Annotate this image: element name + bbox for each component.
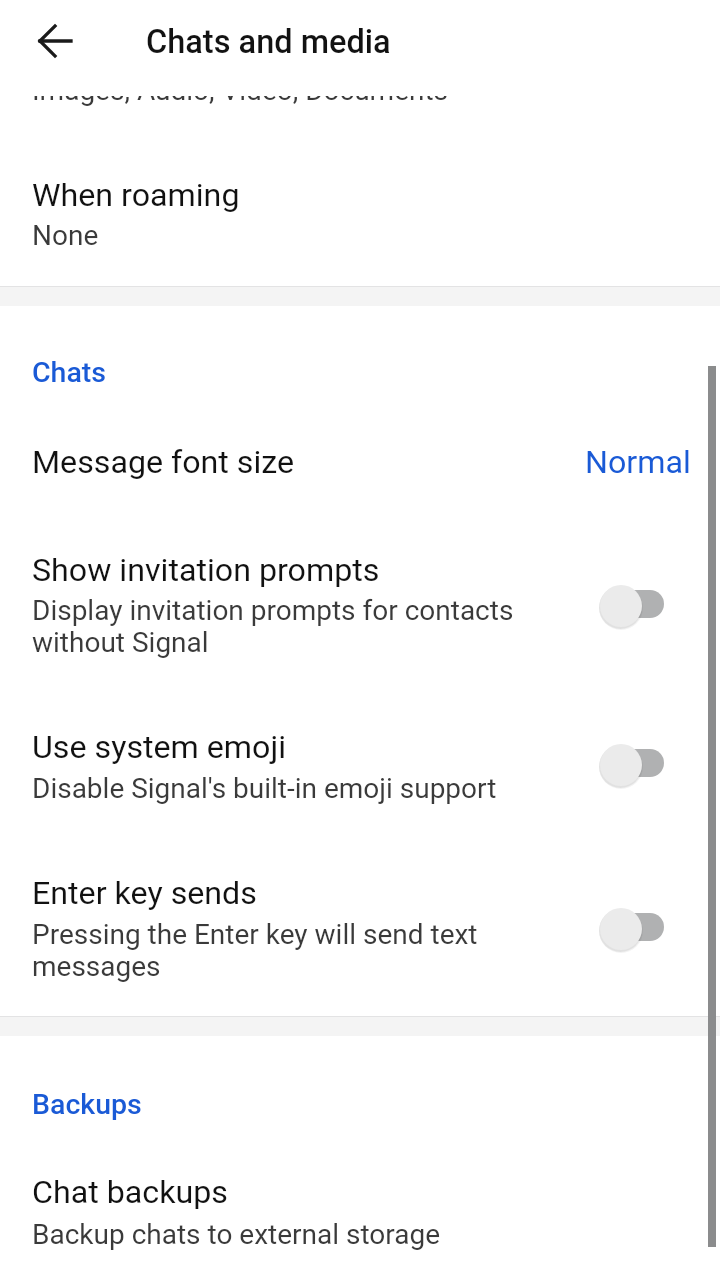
- button[interactable]: Use system emoji: [585, 729, 681, 797]
- button[interactable]: When roaming: [0, 156, 720, 266]
- button[interactable]: Chat backups: [0, 1155, 720, 1265]
- staticText: Chats and media: [146, 23, 391, 61]
- staticText: Pressing the Enter key will send text me…: [32, 918, 478, 983]
- staticText: Show invitation prompts: [32, 551, 380, 589]
- staticText: When roaming: [32, 176, 240, 214]
- button[interactable]: Message font size: [0, 425, 720, 505]
- staticText: Disable Signal's built-in emoji support: [32, 772, 497, 805]
- button[interactable]: Navigate up: [23, 6, 91, 74]
- staticText: Normal: [585, 443, 691, 481]
- button[interactable]: Enter key sends: [585, 893, 681, 961]
- staticText: Backup chats to external storage: [32, 1218, 441, 1251]
- staticText: Display invitation prompts for contacts …: [32, 594, 514, 659]
- staticText: Chats: [32, 356, 107, 389]
- button[interactable]: Images, Audio, Video, Documents: [0, 62, 720, 114]
- button[interactable]: Enter key sends: [0, 860, 720, 1000]
- staticText: Message font size: [32, 443, 295, 481]
- staticText: Images, Audio, Video, Documents: [32, 74, 449, 107]
- button[interactable]: Show invitation prompts: [0, 535, 720, 675]
- staticText: Backups: [32, 1088, 142, 1121]
- staticText: Enter key sends: [32, 874, 257, 912]
- button[interactable]: Show invitation prompts: [585, 570, 681, 638]
- staticText: Use system emoji: [32, 728, 286, 766]
- button[interactable]: Use system emoji: [0, 715, 720, 820]
- staticText: Chat backups: [32, 1173, 228, 1211]
- staticText: None: [32, 219, 99, 252]
